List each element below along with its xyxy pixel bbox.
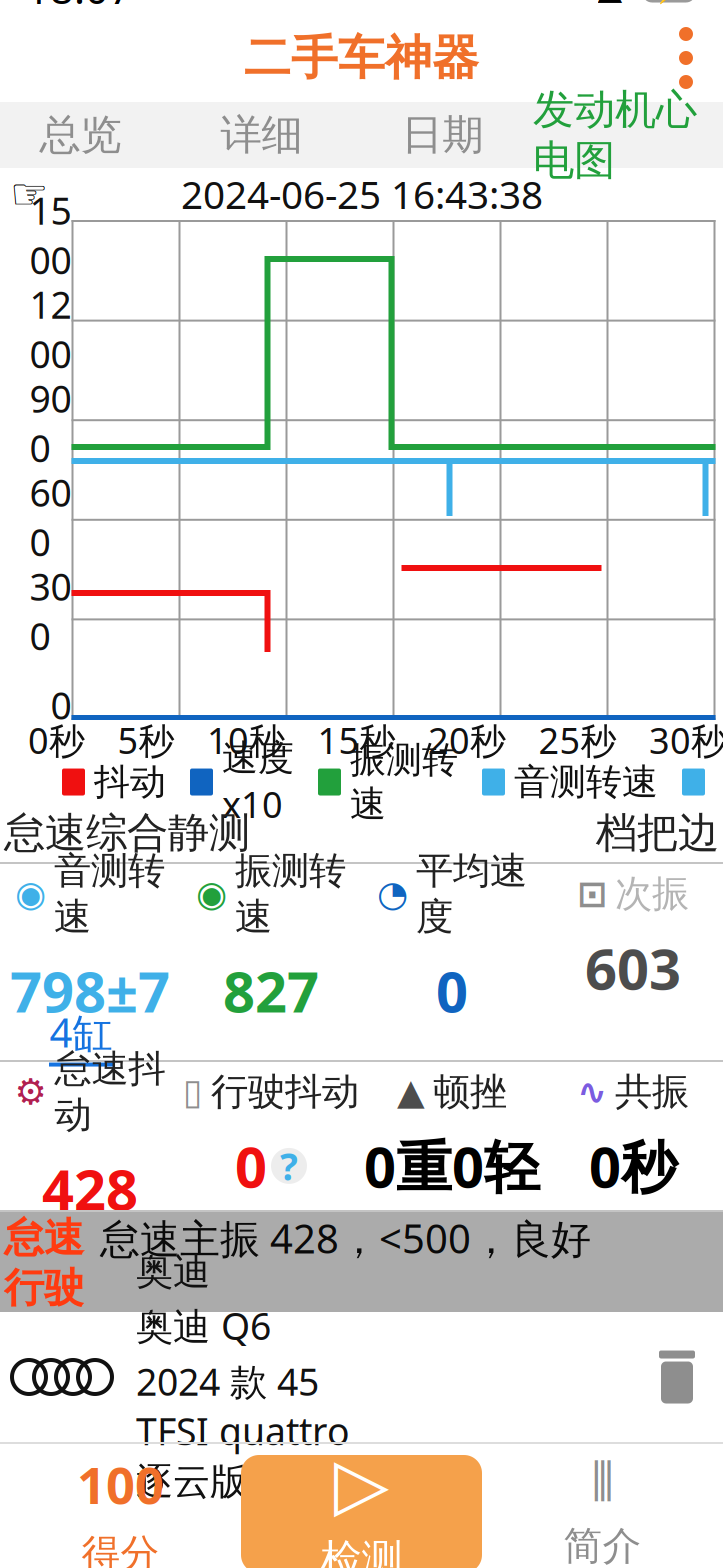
- staticText: 100: [77, 1451, 164, 1518]
- staticText: ◉: [196, 873, 227, 914]
- button[interactable]: ⚙: [0, 1062, 180, 1210]
- staticText: 4缸: [49, 1005, 112, 1058]
- staticText: 5秒: [117, 716, 174, 764]
- button[interactable]: ▯: [180, 1062, 361, 1210]
- staticText: 平均速度: [416, 848, 527, 940]
- staticText: ▲: [597, 0, 622, 6]
- staticText: 10秒: [207, 716, 285, 764]
- staticText: 日期: [401, 110, 483, 160]
- staticText: ▯: [183, 1071, 203, 1112]
- staticText: ⦀: [591, 1458, 614, 1510]
- staticText: ☞: [10, 170, 48, 218]
- staticText: ▲: [397, 1071, 425, 1112]
- staticText: 音测转速: [514, 760, 658, 804]
- staticText: ◔: [377, 873, 408, 914]
- button[interactable]: 日期: [352, 102, 533, 168]
- button[interactable]: 4缸: [6, 1012, 156, 1060]
- button[interactable]: More options: [655, 14, 717, 102]
- staticText: ▷: [334, 1443, 389, 1524]
- staticText: ⊡: [577, 873, 607, 914]
- staticText: 总览: [39, 110, 121, 160]
- staticText: 振测转速: [350, 738, 458, 826]
- staticText: 行驶: [4, 1263, 84, 1312]
- staticText: 简介: [563, 1522, 641, 1568]
- button[interactable]: 总览: [0, 102, 171, 168]
- staticText: 音测转速: [54, 848, 165, 940]
- staticText: 怠速综合静测: [4, 808, 250, 858]
- staticText: 次振: [615, 871, 689, 917]
- button[interactable]: ⊡: [542, 864, 723, 1012]
- staticText: ⚙: [14, 1071, 46, 1112]
- staticText: 0重0轻: [364, 1129, 540, 1203]
- button[interactable]: ◔: [361, 864, 542, 1012]
- staticText: 振测转速: [235, 848, 346, 940]
- button[interactable]: ◉: [0, 864, 180, 1012]
- staticText: 20秒: [428, 716, 506, 764]
- button[interactable]: ∿: [542, 1062, 723, 1210]
- staticText: 30秒: [649, 716, 723, 764]
- staticText: 0: [50, 680, 71, 730]
- staticText: 900: [29, 373, 71, 473]
- staticText: 18:07: [26, 0, 133, 15]
- staticText: 速度 x10: [222, 736, 294, 828]
- staticText: 怠速主振 428，<500，良好: [100, 1211, 591, 1264]
- staticText: 详细: [220, 110, 302, 160]
- staticText: 抖动: [94, 760, 166, 804]
- staticText: 0: [235, 1129, 267, 1203]
- staticText: 2024-06-25 16:43:38: [181, 168, 543, 220]
- staticText: 怠速: [4, 1213, 84, 1262]
- staticText: 奥迪: [136, 1249, 210, 1295]
- button[interactable]: 奥迪: [0, 1312, 723, 1442]
- button[interactable]: 100: [0, 1444, 241, 1568]
- staticText: ∿: [577, 1071, 607, 1112]
- staticText: 0: [436, 954, 468, 1028]
- staticText: 得分: [81, 1530, 159, 1568]
- staticText: 行驶抖动: [211, 1069, 359, 1115]
- staticText: 300: [29, 561, 71, 661]
- button[interactable]: ▷: [241, 1455, 482, 1568]
- button[interactable]: ◉: [180, 864, 361, 1012]
- staticText: 档把边: [596, 808, 719, 858]
- staticText: 1200: [29, 279, 71, 379]
- staticText: 0秒: [589, 1129, 677, 1203]
- staticText: 15秒: [317, 716, 395, 764]
- staticText: 奥迪 Q6: [136, 1301, 271, 1350]
- staticText: 428: [42, 1152, 138, 1226]
- staticText: 怠速抖动: [54, 1046, 165, 1138]
- button[interactable]: ⦀: [482, 1444, 723, 1568]
- staticText: 检测: [320, 1534, 402, 1568]
- staticText: 25秒: [538, 716, 616, 764]
- staticText: 1500: [29, 185, 71, 285]
- staticText: 827: [223, 954, 319, 1028]
- staticText: 发动机心电图: [533, 84, 697, 186]
- button[interactable]: ▲: [361, 1062, 542, 1210]
- staticText: 共振: [615, 1069, 689, 1115]
- staticText: ◉: [15, 873, 46, 914]
- staticText: 798±7: [10, 954, 170, 1028]
- button[interactable]: 详细: [171, 102, 352, 168]
- staticText: 二手车神器: [244, 29, 479, 87]
- staticText: ?: [280, 1141, 298, 1191]
- button[interactable]: 发动机心电图: [533, 102, 723, 168]
- staticText: 0秒: [28, 716, 85, 764]
- staticText: ⚡: [651, 0, 686, 4]
- staticText: 2024 款 45 TFSI quattro 逐云版 6 座: [136, 1356, 350, 1505]
- staticText: 600: [29, 467, 71, 567]
- staticText: 顿挫: [433, 1069, 507, 1115]
- staticText: 603: [585, 931, 681, 1005]
